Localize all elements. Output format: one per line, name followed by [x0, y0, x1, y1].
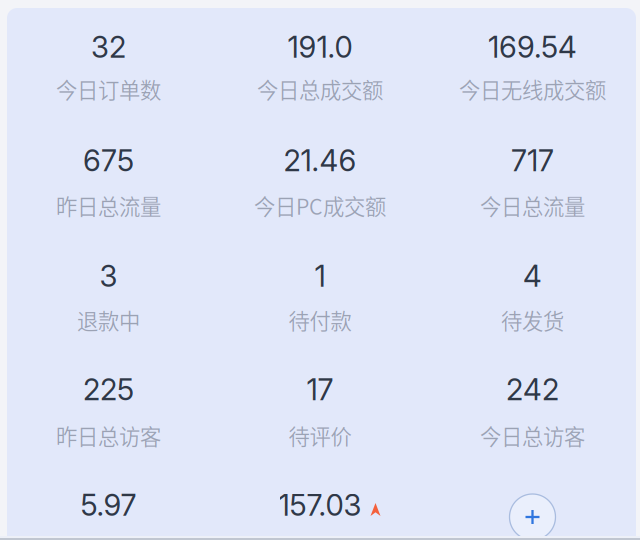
staticText: 今日总流量 — [480, 190, 585, 221]
button[interactable]: 242 — [429, 372, 635, 468]
staticText: 今日总成交额 — [257, 74, 383, 104]
staticText: 今日订单数 — [56, 74, 161, 104]
button[interactable]: 225 — [5, 372, 211, 468]
staticText: 21.46 — [283, 143, 356, 178]
staticText: 今日无线成交额 — [459, 74, 606, 104]
button[interactable]: 17 — [217, 372, 423, 468]
staticText: 191.0 — [287, 29, 352, 65]
staticText: 32 — [91, 29, 126, 65]
staticText: 待发货 — [501, 305, 564, 335]
button[interactable]: 5.97 — [5, 488, 211, 540]
staticText: 242 — [506, 372, 559, 407]
staticText: 4 — [523, 258, 542, 294]
button[interactable]: 191.0 — [217, 30, 423, 126]
staticText: 待评价 — [288, 420, 351, 451]
staticText: 昨日总访客 — [56, 420, 161, 451]
button[interactable]: 1 — [217, 259, 423, 355]
button[interactable]: 157.03 — [217, 488, 423, 540]
staticText: 717 — [511, 143, 554, 178]
staticText: 17 — [306, 372, 333, 407]
staticText: 1 — [314, 258, 325, 294]
staticText: 退款中 — [77, 305, 140, 335]
button[interactable] — [429, 488, 635, 540]
button[interactable]: 32 — [5, 30, 211, 126]
staticText: 675 — [83, 143, 134, 178]
staticText: 今日PC成交额 — [254, 190, 386, 221]
button[interactable]: Add — [509, 494, 555, 540]
staticText: 5.97 — [80, 487, 136, 523]
staticText: 157.03 — [278, 487, 361, 523]
staticText: 3 — [99, 258, 117, 294]
button[interactable]: 3 — [5, 259, 211, 355]
staticText: 昨日总流量 — [56, 190, 161, 221]
staticText: 今日总访客 — [480, 420, 585, 451]
button[interactable]: 4 — [429, 259, 635, 355]
staticText: 待付款 — [288, 305, 351, 335]
staticText: 225 — [83, 372, 134, 407]
staticText: 169.54 — [488, 29, 577, 65]
button[interactable]: 717 — [429, 143, 635, 239]
button[interactable]: 169.54 — [429, 30, 635, 126]
button[interactable]: 21.46 — [217, 143, 423, 239]
button[interactable]: 675 — [5, 143, 211, 239]
